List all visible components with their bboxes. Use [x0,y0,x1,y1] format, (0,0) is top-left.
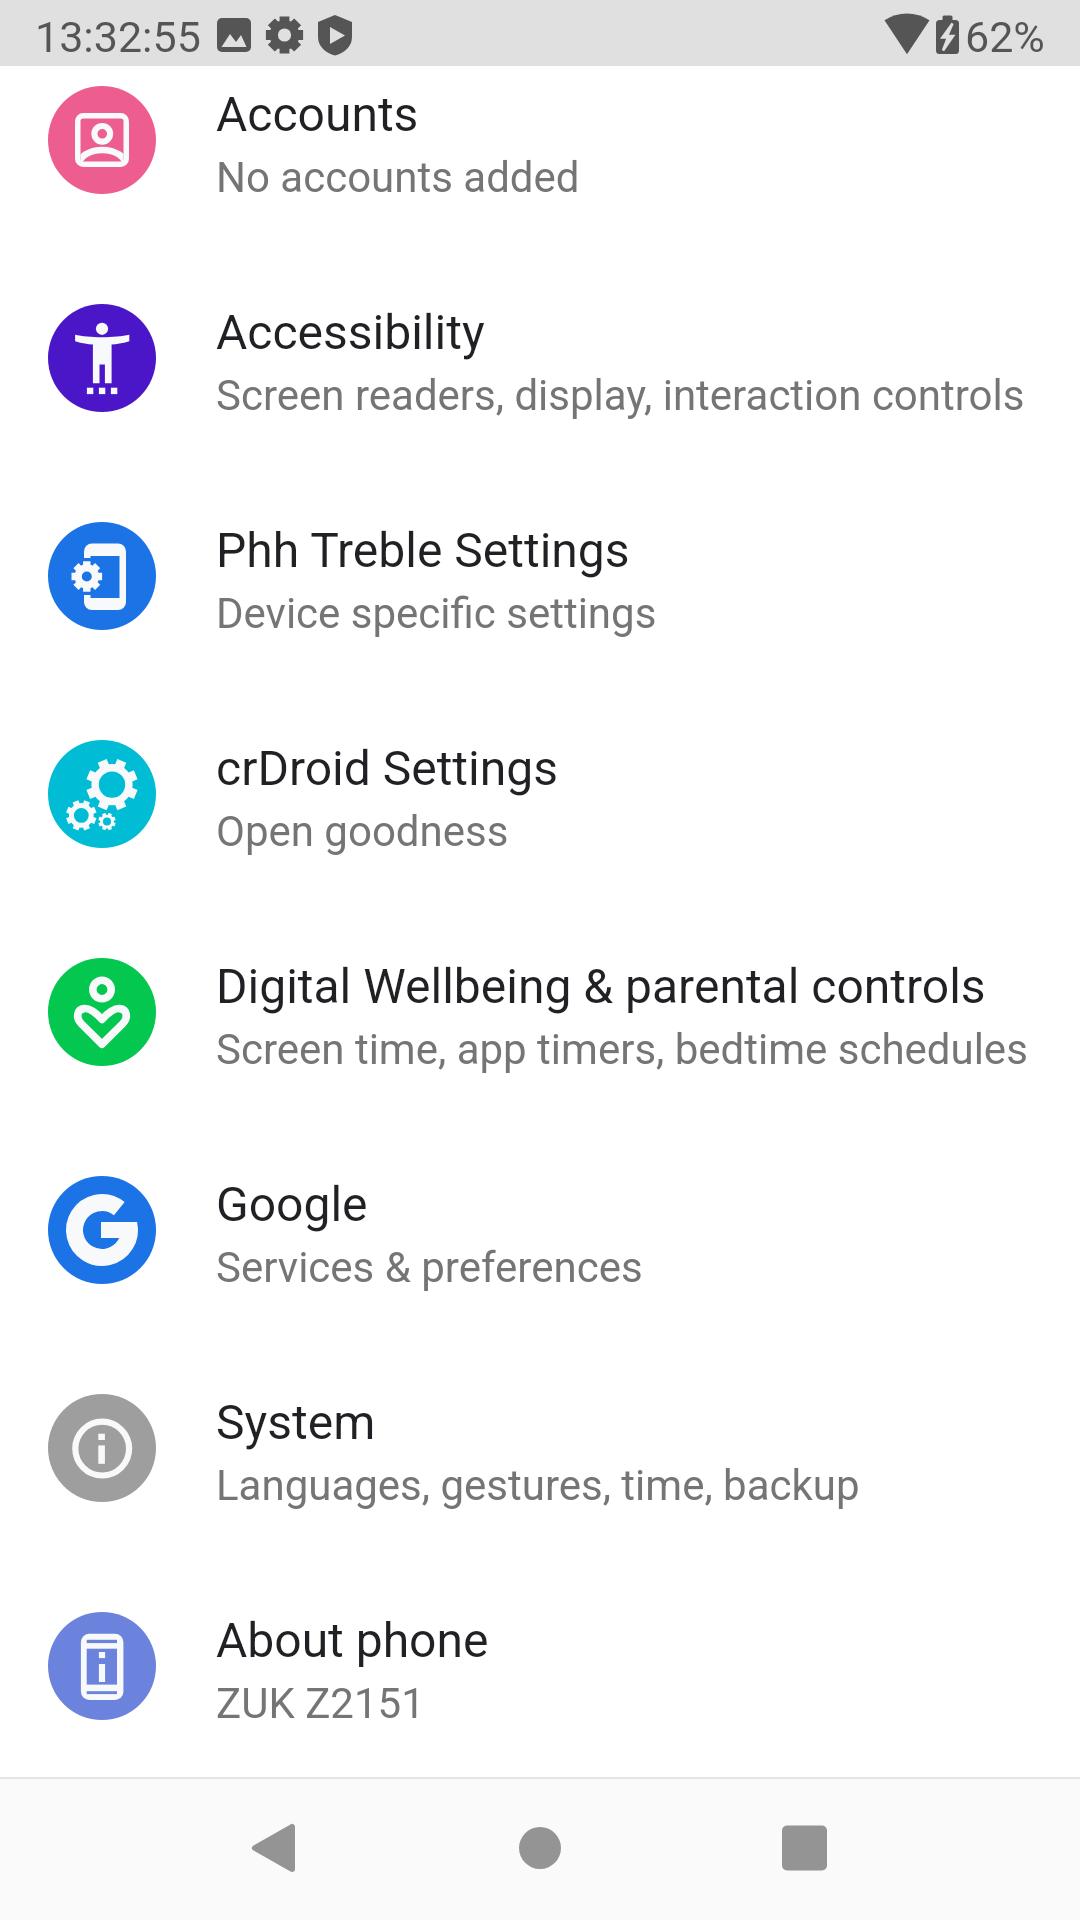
button[interactable]: Phh Treble Settings [0,467,1080,685]
staticText: Google [216,1176,368,1232]
button[interactable]: crDroid Settings [0,685,1080,903]
staticText: Accounts [216,86,419,142]
button[interactable]: Back [213,1790,333,1910]
staticText: Digital Wellbeing & parental controls [216,958,986,1014]
button[interactable]: Recent apps [744,1790,864,1910]
staticText: Screen time, app timers, bedtime schedul… [216,1025,1028,1074]
staticText: Services & preferences [216,1243,643,1292]
button[interactable]: Home [480,1790,600,1910]
staticText: 62% [965,12,1045,62]
button[interactable]: Accessibility [0,249,1080,467]
staticText: No accounts added [216,153,580,202]
staticText: Open goodness [216,807,509,856]
staticText: 13:32:55 [35,12,201,62]
button[interactable]: System [0,1339,1080,1557]
staticText: crDroid Settings [216,740,558,796]
staticText: Accessibility [216,304,485,360]
staticText: System [216,1394,376,1450]
staticText: Screen readers, display, interaction con… [216,371,1025,420]
staticText: Phh Treble Settings [216,522,630,578]
button[interactable]: Accounts [0,31,1080,249]
button[interactable]: Google [0,1121,1080,1339]
staticText: ZUK Z2151 [216,1679,425,1728]
staticText: Device specific settings [216,589,657,638]
button[interactable]: Digital Wellbeing & parental controls [0,903,1080,1121]
button[interactable]: About phone [0,1557,1080,1775]
staticText: About phone [216,1612,489,1668]
staticText: Languages, gestures, time, backup [216,1461,860,1510]
